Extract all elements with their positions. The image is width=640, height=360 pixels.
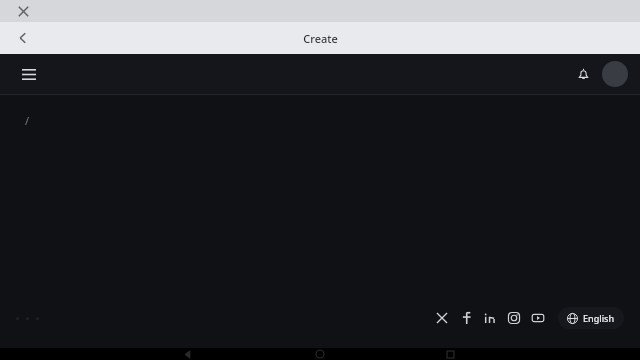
- button[interactable]: Facebook: [454, 306, 478, 330]
- button[interactable]: Menu: [14, 59, 44, 89]
- staticText: Create: [303, 31, 338, 46]
- button[interactable]: Back: [176, 348, 200, 360]
- button[interactable]: LinkedIn: [478, 306, 502, 330]
- button[interactable]: X on X: [430, 306, 454, 330]
- button[interactable]: Account: [602, 61, 628, 87]
- button[interactable]: Home: [308, 348, 332, 360]
- button[interactable]: Notifications: [568, 59, 598, 89]
- button[interactable]: YouTube: [526, 306, 550, 330]
- button[interactable]: Instagram: [502, 306, 526, 330]
- button[interactable]: English: [558, 307, 624, 329]
- staticText: English: [583, 312, 615, 324]
- staticText: /: [25, 113, 30, 128]
- button[interactable]: Close: [8, 0, 38, 22]
- button[interactable]: Back: [8, 23, 38, 53]
- button[interactable]: Recent apps: [438, 348, 462, 360]
